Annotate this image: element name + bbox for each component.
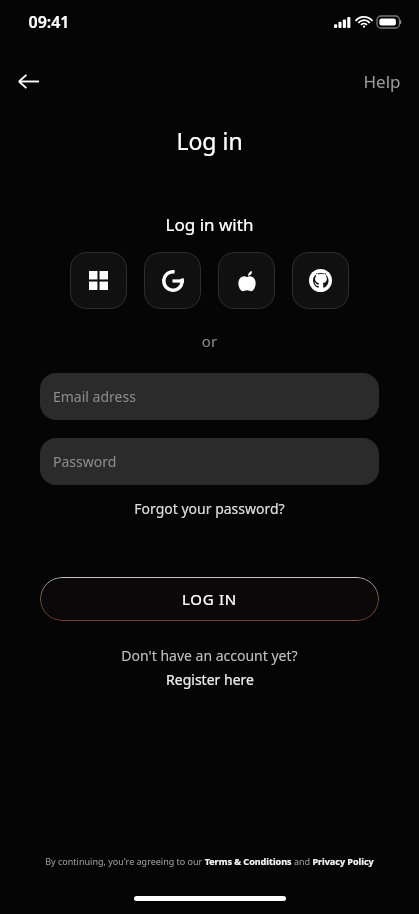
staticText: Log in — [0, 125, 419, 156]
button[interactable]: By continuing, you're agreeing to our Te… — [45, 855, 374, 867]
staticText: Don't have an account yet? — [0, 646, 419, 665]
staticText: Password — [53, 452, 117, 471]
staticText: Register here — [166, 670, 254, 689]
button[interactable]: Sign in with Microsoft — [70, 252, 127, 309]
staticText: Log in with — [0, 213, 419, 236]
staticText: Help — [363, 70, 401, 93]
staticText: 09:41 — [28, 11, 70, 33]
button[interactable]: Sign in with GitHub — [292, 252, 349, 309]
button[interactable]: Sign in with Google — [144, 252, 201, 309]
button[interactable]: Help — [357, 62, 407, 101]
button[interactable]: Register here — [158, 669, 262, 690]
button[interactable]: Forgot your password? — [126, 496, 293, 521]
staticText: LOG IN — [182, 589, 237, 609]
staticText: or — [0, 331, 419, 351]
button[interactable]: Password — [40, 438, 379, 485]
staticText: Email adress — [53, 387, 136, 406]
button[interactable]: LOG IN — [40, 577, 379, 621]
button[interactable]: Email adress — [40, 373, 379, 420]
staticText: Forgot your password? — [134, 499, 285, 518]
button[interactable]: Sign in with Apple — [218, 252, 275, 309]
button[interactable]: Back — [6, 59, 50, 103]
